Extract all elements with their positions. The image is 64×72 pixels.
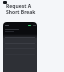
button[interactable]: Back	[3, 0, 7, 4]
button[interactable]	[3, 22, 37, 72]
staticText: Request A Short Break	[6, 3, 36, 16]
